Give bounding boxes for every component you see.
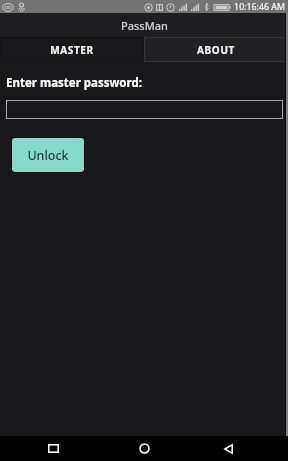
staticText: MASTER [50,43,94,57]
button[interactable] [6,100,283,119]
staticText: 10:16:46 AM [234,1,285,13]
button[interactable]: MASTER [0,37,144,62]
button[interactable]: Back [213,436,244,461]
staticText: Enter master password: [6,75,142,91]
button[interactable]: Unlock [12,138,84,172]
staticText: PassMan [121,18,168,33]
staticText: Unlock [27,147,69,164]
staticText: ABOUT [197,43,235,57]
button[interactable]: Recents [38,436,69,461]
button[interactable]: Home [129,436,160,461]
button[interactable]: ABOUT [144,37,288,62]
